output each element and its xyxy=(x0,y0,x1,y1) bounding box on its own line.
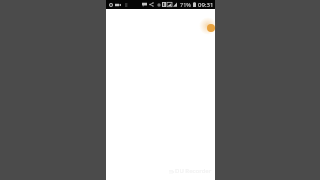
staticText: 09:31 xyxy=(198,1,214,9)
staticText: DU Recorder xyxy=(175,167,212,175)
staticText: 71% xyxy=(180,1,191,8)
button[interactable]: Add xyxy=(207,24,215,32)
